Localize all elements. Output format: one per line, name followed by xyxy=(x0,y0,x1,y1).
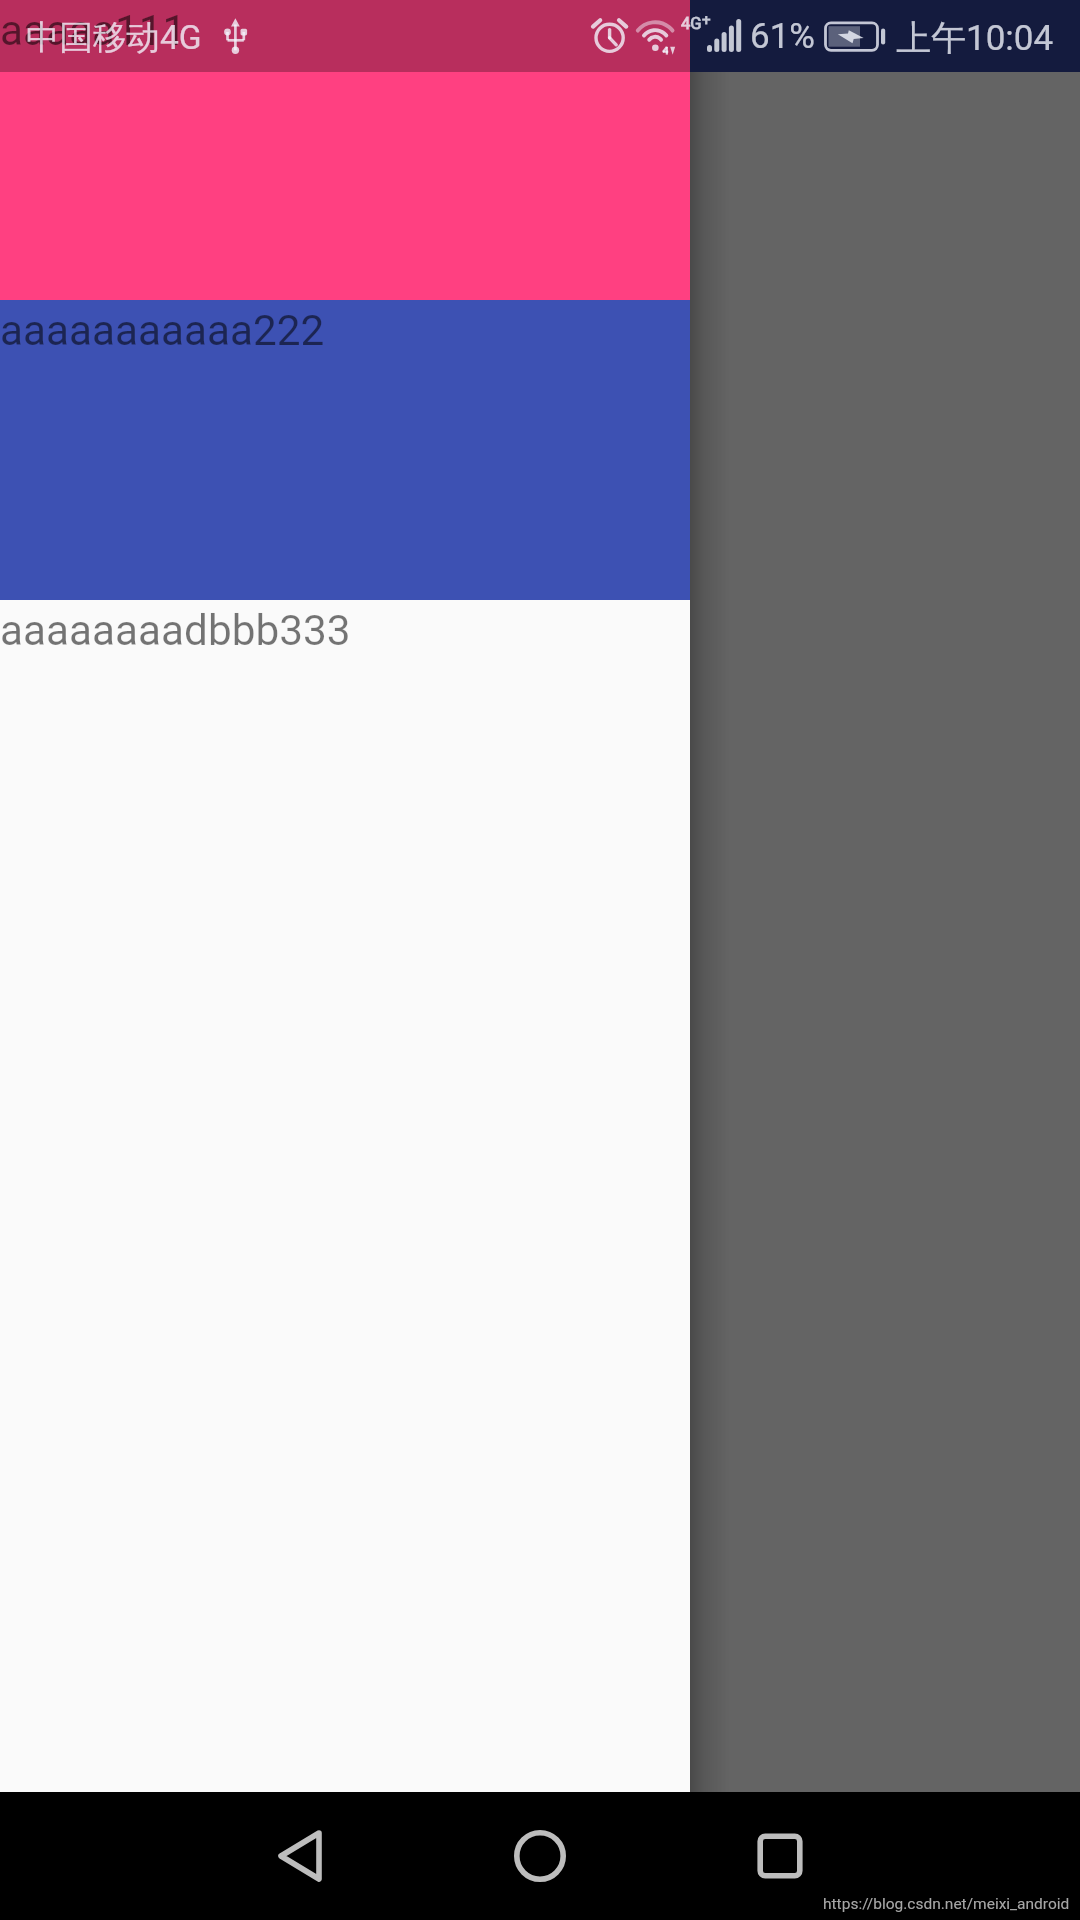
staticText: https://blog.csdn.net/meixi_android xyxy=(823,1895,1070,1913)
staticText: 中国移动4G xyxy=(26,17,202,59)
button[interactable]: aaaaa111 xyxy=(0,0,690,300)
button[interactable]: Home xyxy=(480,1792,600,1920)
staticText: aaaaaaaaaaa222 xyxy=(0,306,325,356)
staticText: 上午10:04 xyxy=(896,16,1054,60)
staticText: aaaaaaaadbbb333 xyxy=(0,606,351,656)
button[interactable]: Recent apps xyxy=(720,1792,840,1920)
button[interactable]: aaaaaaaadbbb333 xyxy=(0,600,690,1792)
staticText: 4G xyxy=(681,14,702,33)
staticText: aaaaa111 xyxy=(0,6,187,56)
staticText: 61% xyxy=(750,16,815,57)
button[interactable]: aaaaaaaaaaa222 xyxy=(0,300,690,600)
staticText: + xyxy=(702,11,711,29)
button[interactable]: Close navigation drawer xyxy=(0,0,1080,1792)
button[interactable]: Back xyxy=(240,1792,360,1920)
